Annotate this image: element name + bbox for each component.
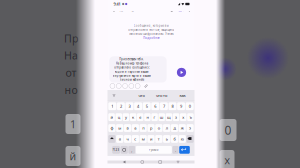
button[interactable]: г [151,113,158,121]
button[interactable]: , [128,146,135,154]
button[interactable]: а [132,124,139,132]
button[interactable]: что то [150,91,172,99]
button[interactable]: Keyboard settings [176,160,179,163]
button[interactable]: 0 [186,102,194,110]
button[interactable]: к [130,113,136,121]
button[interactable]: ш [158,113,165,121]
button[interactable]: Back [112,10,117,16]
button[interactable]: 9 [177,102,185,110]
staticText: 4 [137,104,139,109]
button[interactable]: 5 [143,102,151,110]
staticText: 5 [146,104,148,109]
button[interactable]: что [132,91,150,99]
button[interactable]: Video call [178,11,184,15]
button[interactable]: ф [108,124,115,132]
button[interactable]: о [155,124,162,132]
button[interactable]: 8 [168,102,176,110]
button[interactable]: Keyboard options [111,92,116,98]
staticText: у [125,114,127,120]
button[interactable]: п [140,124,147,132]
staticText: Сообщения, которые вы [133,24,168,27]
button[interactable]: Back [122,160,126,163]
button[interactable]: More options [187,10,191,16]
button[interactable]: Play voice message [177,68,186,77]
button[interactable]: е [137,113,144,121]
button[interactable]: я [116,135,123,143]
staticText: что [138,93,144,98]
staticText: е [139,114,141,120]
button[interactable]: Backspace [186,135,194,143]
button[interactable]: ы [116,124,123,132]
staticText: 8 [171,104,173,109]
button[interactable]: 4 [134,102,142,110]
button[interactable]: Home [141,160,144,163]
staticText: ю [181,136,184,142]
button[interactable]: React [116,83,121,88]
staticText: 1 [111,104,113,109]
staticText: , [131,147,132,152]
button[interactable]: Call [170,11,175,15]
staticText: 2 [120,104,122,109]
button[interactable]: React [122,83,127,88]
staticText: Пр [64,31,78,45]
staticText: й [69,149,76,163]
button[interactable]: ?123 [112,146,120,154]
staticText: з [175,114,177,120]
button[interactable]: ь [163,135,170,143]
button[interactable]: Русский [136,146,172,154]
staticText: м [142,136,145,142]
button[interactable]: React [135,83,140,88]
staticText: 9 [180,104,182,109]
button[interactable]: 1 [108,102,116,110]
button[interactable]: ц [115,113,122,121]
button[interactable]: х [180,113,187,121]
staticText: т [158,136,160,142]
button[interactable]: м [140,135,147,143]
staticText: ы [118,125,121,131]
button[interactable]: у [123,113,129,121]
button[interactable]: э [186,124,194,132]
staticText: в [126,125,128,131]
button[interactable]: React [129,83,134,88]
button[interactable]: й [108,113,115,121]
button[interactable]: в [124,124,131,132]
button[interactable]: л [163,124,170,132]
button[interactable]: как [172,91,192,99]
button[interactable]: ъ [187,113,194,121]
button[interactable]: ю [179,135,186,143]
button[interactable]: н [144,113,151,121]
button[interactable]: ч [124,135,131,143]
button[interactable]: 3 [125,102,133,110]
staticText: 6 [154,104,156,109]
button[interactable]: Shift [108,135,115,143]
staticText: На Ваш номер телефона [116,62,148,65]
staticText: Подробнее [143,36,159,40]
button[interactable]: 2 [117,102,125,110]
button[interactable]: з [173,113,179,121]
staticText: с [134,136,136,142]
button[interactable]: и [147,135,155,143]
button[interactable]: ж [179,124,186,132]
staticText: ж [181,125,184,131]
staticText: . [175,147,176,152]
staticText: о [158,125,160,131]
button[interactable]: щ [166,113,172,121]
button[interactable]: т [155,135,162,143]
staticText: щ [167,114,171,120]
button[interactable]: Attach [143,83,148,88]
button[interactable]: с [132,135,139,143]
button[interactable]: б [171,135,178,143]
staticText: я [119,136,121,142]
button[interactable]: д [171,124,178,132]
button[interactable]: 6 [151,102,159,110]
button[interactable]: . [172,146,179,154]
button[interactable]: React [110,83,115,88]
button[interactable]: Emoji [121,146,128,154]
button[interactable]: р [147,124,155,132]
button[interactable]: Enter [179,146,190,154]
button[interactable]: Recents [159,161,162,163]
staticText: кодом и паролем Вашей [115,70,149,73]
button[interactable]: 7 [160,102,168,110]
staticText: ц [118,114,120,120]
staticText: Приветствуем тебя. [119,58,144,61]
